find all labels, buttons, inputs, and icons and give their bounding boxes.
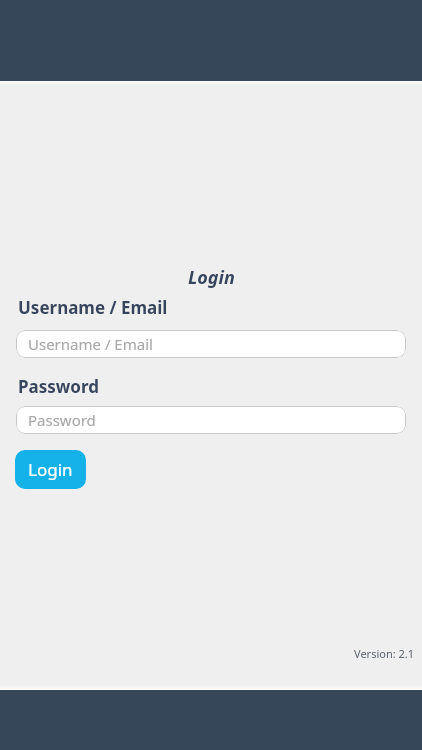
button[interactable]: Login xyxy=(15,450,86,489)
button[interactable]: Password xyxy=(16,406,406,434)
staticText: Username / Email xyxy=(28,334,153,354)
staticText: Login xyxy=(28,458,73,481)
staticText: Username / Email xyxy=(18,296,168,319)
staticText: Login xyxy=(188,265,235,290)
staticText: Password xyxy=(18,375,99,398)
staticText: Password xyxy=(28,410,96,430)
button[interactable]: Username / Email xyxy=(16,330,406,358)
staticText: Version: 2.1 xyxy=(354,646,415,661)
